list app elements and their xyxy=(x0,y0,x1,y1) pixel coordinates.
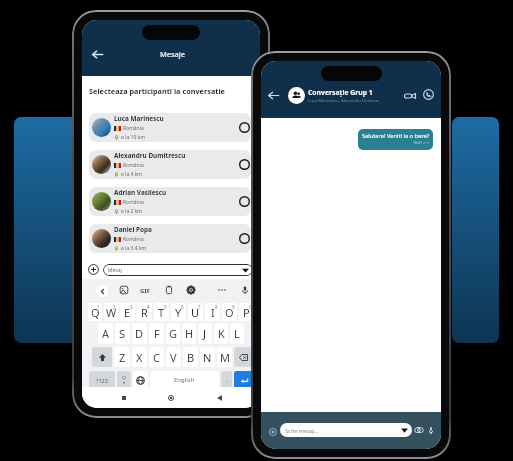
button[interactable]: V xyxy=(166,347,181,367)
button[interactable]: Select participant xyxy=(239,122,250,133)
staticText: Z xyxy=(119,350,126,365)
staticText: 3 xyxy=(130,304,133,310)
button[interactable]: . xyxy=(221,371,232,389)
staticText: e la 10 km xyxy=(121,134,145,141)
button[interactable]: Scrie mesaj... xyxy=(280,423,412,437)
button[interactable]: Back xyxy=(265,87,281,103)
button[interactable]: dots xyxy=(217,285,227,295)
staticText: Mesaje xyxy=(160,49,186,59)
button[interactable]: N xyxy=(200,347,215,367)
staticText: L xyxy=(234,326,240,341)
staticText: Alexandru Dumitrescu xyxy=(114,151,186,160)
button[interactable]: Back xyxy=(213,392,225,404)
button[interactable]: Add attachment xyxy=(88,264,99,275)
button[interactable]: Video call xyxy=(402,88,418,104)
staticText: F xyxy=(154,326,160,341)
button[interactable]: R xyxy=(137,303,152,321)
button[interactable]: gear xyxy=(186,285,196,295)
button[interactable]: H xyxy=(182,323,196,344)
staticText: Y xyxy=(175,305,182,320)
button[interactable]: Z xyxy=(114,347,130,367)
button[interactable]: Backspace xyxy=(234,347,253,367)
button[interactable]: D xyxy=(132,323,147,344)
staticText: 8 xyxy=(215,304,218,310)
button[interactable]: Adrian Vasilescu xyxy=(89,187,251,216)
staticText: S xyxy=(119,326,126,341)
button[interactable]: F xyxy=(149,323,164,344)
button[interactable]: K xyxy=(214,323,228,344)
button[interactable]: Back xyxy=(89,46,105,62)
button[interactable]: E xyxy=(120,303,135,321)
button[interactable]: Select participant xyxy=(239,233,250,244)
button[interactable]: ?123 xyxy=(89,371,115,389)
button[interactable]: O xyxy=(222,303,237,321)
staticText: Scrie mesaj... xyxy=(285,427,319,434)
staticText: W xyxy=(106,305,117,320)
button[interactable]: clipboard xyxy=(164,285,174,295)
button[interactable]: Shift xyxy=(92,347,112,367)
staticText: România xyxy=(123,199,144,206)
button[interactable]: Select participant xyxy=(239,196,250,207)
button[interactable]: Collapse toolbar xyxy=(96,285,108,297)
staticText: English xyxy=(174,376,195,384)
button[interactable]: Add attachment xyxy=(267,426,278,437)
staticText: 0 xyxy=(249,304,252,310)
staticText: R xyxy=(141,305,148,320)
staticText: G xyxy=(169,326,178,341)
staticText: Luca Marinescu, Alexandru Dimitrov xyxy=(308,98,379,104)
staticText: X xyxy=(136,350,143,365)
staticText: C xyxy=(153,350,160,365)
button[interactable]: B xyxy=(183,347,198,367)
staticText: Conversație Grup 1 xyxy=(308,88,373,97)
button[interactable]: sticker xyxy=(119,285,129,295)
button[interactable]: P xyxy=(239,303,254,321)
staticText: e la 3.4 km xyxy=(121,245,147,252)
button[interactable]: W xyxy=(104,303,118,321)
button[interactable]: T xyxy=(154,303,169,321)
button[interactable]: Recent apps xyxy=(118,392,130,404)
button[interactable]: Q xyxy=(88,303,102,321)
staticText: T xyxy=(158,305,165,320)
button[interactable]: A xyxy=(98,323,113,344)
staticText: D xyxy=(135,326,144,341)
button[interactable]: Luca Marinescu xyxy=(89,113,251,142)
staticText: A xyxy=(102,326,110,341)
staticText: P xyxy=(243,305,250,320)
button[interactable]: Salutare! Veniti la o bere? xyxy=(358,129,433,150)
staticText: V xyxy=(170,350,177,365)
button[interactable]: L xyxy=(230,323,244,344)
button[interactable]: Camera xyxy=(414,425,424,435)
button[interactable]: U xyxy=(188,303,203,321)
button[interactable]: Daniel Popa xyxy=(89,224,251,253)
staticText: O xyxy=(225,305,234,320)
staticText: România xyxy=(123,236,144,243)
button[interactable]: Home xyxy=(165,392,177,404)
staticText: 7 xyxy=(198,304,201,310)
button[interactable]: Voice message xyxy=(426,425,436,435)
staticText: M xyxy=(220,350,230,365)
button[interactable]: Y xyxy=(171,303,186,321)
button[interactable]: Voice call xyxy=(422,88,435,101)
button[interactable]: J xyxy=(198,323,212,344)
button[interactable]: Alexandru Dumitrescu xyxy=(89,150,251,179)
button[interactable]: mic xyxy=(240,285,250,295)
staticText: 9 xyxy=(232,304,235,310)
staticText: Mesaj xyxy=(108,267,122,274)
button[interactable]: Emoji and comma xyxy=(117,371,131,389)
button[interactable]: Mesaj xyxy=(103,264,253,276)
button[interactable]: X xyxy=(132,347,147,367)
button[interactable]: Select participant xyxy=(239,159,250,170)
button[interactable]: M xyxy=(217,347,232,367)
button[interactable]: English xyxy=(150,371,219,389)
staticText: 2 xyxy=(113,304,116,310)
button[interactable]: G xyxy=(166,323,180,344)
button[interactable]: GIF xyxy=(140,287,150,295)
staticText: Selecteaza participanti la conversatie xyxy=(89,86,225,96)
button[interactable]: Enter xyxy=(234,371,254,389)
staticText: 4 xyxy=(147,304,150,310)
button[interactable]: Change language xyxy=(133,371,148,389)
button[interactable]: C xyxy=(149,347,164,367)
staticText: ?123 xyxy=(96,377,108,384)
button[interactable]: S xyxy=(115,323,130,344)
button[interactable]: I xyxy=(205,303,220,321)
